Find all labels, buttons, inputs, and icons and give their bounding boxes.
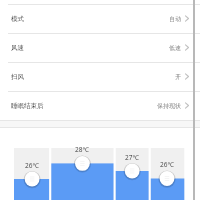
button[interactable]: 风速 bbox=[0, 33, 200, 62]
button[interactable]: Adjust temperature bbox=[160, 171, 175, 186]
staticText: 睡眠结束后 bbox=[11, 102, 44, 110]
staticText: 28℃ bbox=[75, 145, 89, 154]
button[interactable]: Adjust temperature bbox=[75, 156, 90, 171]
button[interactable]: 睡眠结束后 bbox=[0, 91, 200, 120]
staticText: 26℃ bbox=[160, 160, 174, 169]
button[interactable]: 扫风 bbox=[0, 62, 200, 91]
staticText: 模式 bbox=[11, 15, 24, 23]
staticText: 保持现状 bbox=[157, 102, 181, 110]
staticText: 27℃ bbox=[125, 153, 139, 162]
button[interactable]: Adjust temperature bbox=[125, 164, 140, 179]
button[interactable]: 模式 bbox=[0, 4, 200, 33]
staticText: 风速 bbox=[11, 44, 24, 52]
staticText: 26℃ bbox=[25, 161, 39, 170]
staticText: 扫风 bbox=[11, 73, 24, 81]
button[interactable]: Adjust temperature bbox=[25, 172, 40, 187]
staticText: 低速 bbox=[169, 44, 181, 52]
staticText: 开 bbox=[175, 73, 181, 81]
staticText: 自动 bbox=[169, 15, 181, 23]
